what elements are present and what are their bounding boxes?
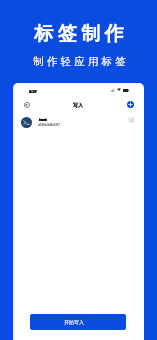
staticText: text [40, 117, 48, 122]
staticText: 6:27 [29, 89, 37, 94]
staticText: 6:27 [30, 89, 38, 94]
button[interactable]: Add [123, 97, 138, 112]
staticText: 制作轻应用标签 [33, 55, 129, 68]
button[interactable]: text [13, 114, 144, 131]
staticText: 6:27 [29, 89, 37, 94]
staticText: 6:27 [29, 89, 37, 94]
staticText: text [39, 117, 47, 122]
staticText: a04b3c9d8e2f17 [38, 123, 60, 127]
staticText: text [39, 117, 47, 122]
staticText: 写入 [73, 102, 83, 108]
staticText: 写入 [73, 102, 83, 108]
staticText: 6:27 [29, 89, 37, 94]
staticText: 标签制作 [32, 22, 126, 46]
staticText: text [39, 117, 47, 122]
button[interactable]: 开始写入 [30, 314, 126, 330]
staticText: 写入 [73, 102, 83, 108]
staticText: 开始写入 [64, 319, 84, 325]
button[interactable]: Back [19, 97, 34, 112]
staticText: a04b3c9d8e2f17 [38, 123, 60, 127]
staticText: text [39, 117, 47, 122]
